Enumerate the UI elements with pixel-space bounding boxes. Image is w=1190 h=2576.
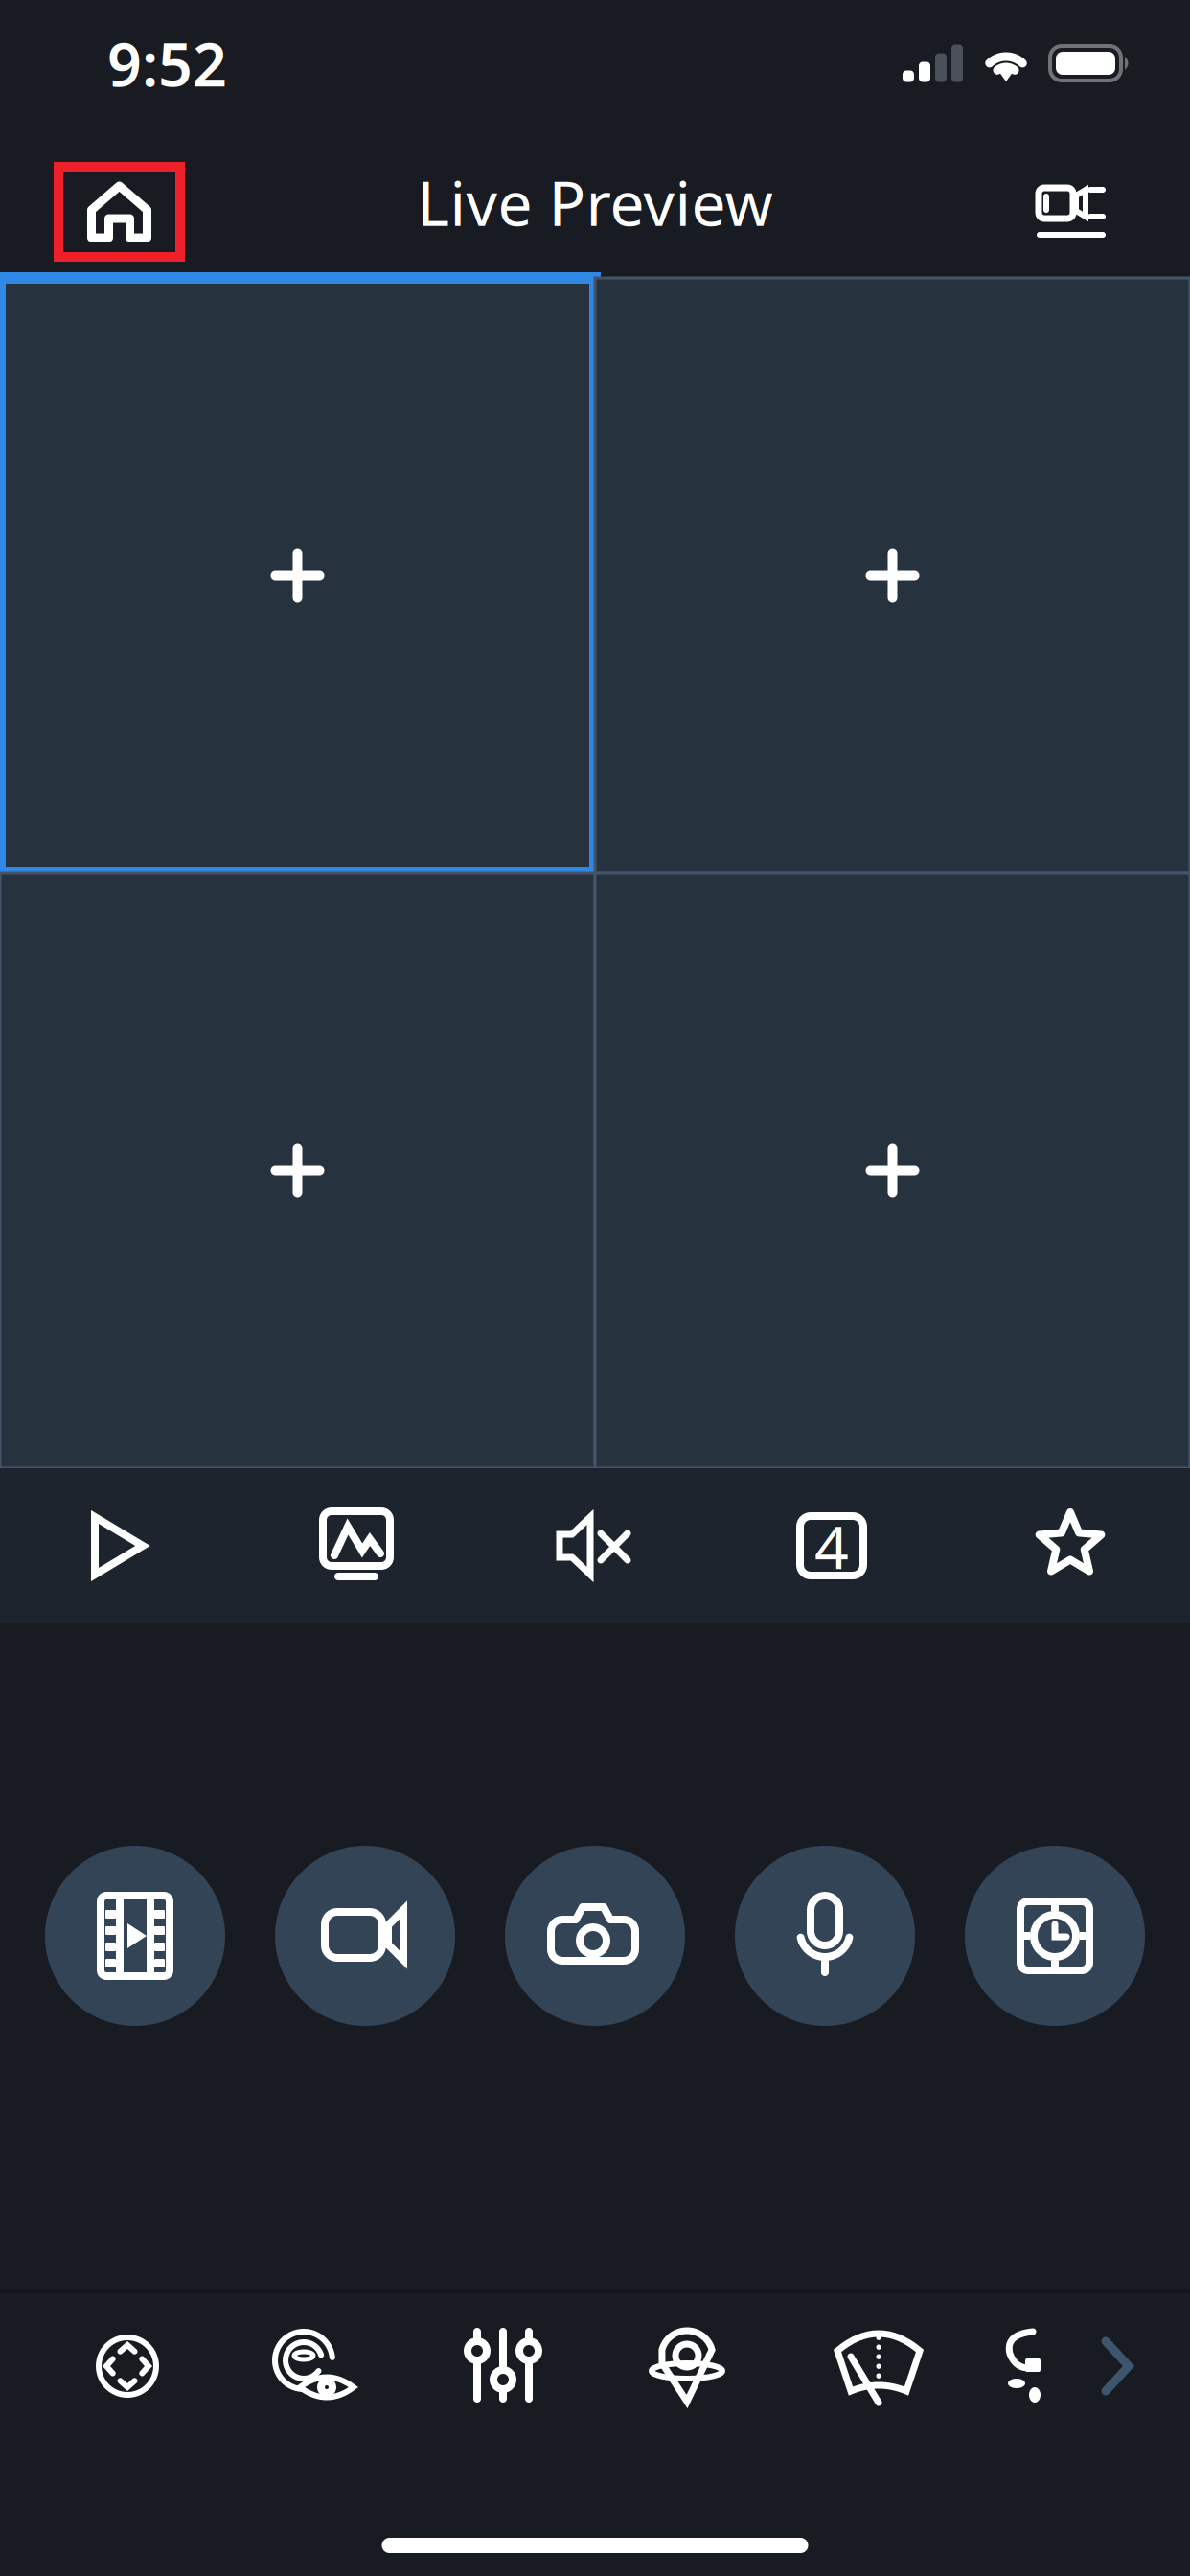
button[interactable]: Add camera xyxy=(0,873,595,1468)
button[interactable]: More controls xyxy=(1078,2293,1156,2439)
button[interactable]: Add camera xyxy=(595,278,1190,873)
button[interactable]: Timeline xyxy=(965,1846,1145,2026)
staticText: 9:52 xyxy=(107,23,227,103)
staticText: Live Preview xyxy=(417,161,773,243)
button[interactable]: Two-way talk xyxy=(735,1846,915,2026)
button[interactable]: Stream statistics xyxy=(238,1468,475,1623)
button[interactable]: Favourite xyxy=(950,1468,1190,1623)
button[interactable]: Play xyxy=(0,1468,238,1623)
button[interactable]: Multi-camera view xyxy=(1028,155,1114,268)
button[interactable]: Record video xyxy=(275,1846,455,2026)
button[interactable]: Add camera xyxy=(595,873,1190,1468)
button[interactable]: Playback xyxy=(45,1846,225,2026)
button[interactable]: Add camera xyxy=(0,278,595,873)
button[interactable]: Wiper xyxy=(785,2293,973,2439)
button[interactable]: Take snapshot xyxy=(505,1846,685,2026)
button[interactable]: Pan and tilt xyxy=(34,2293,221,2439)
button[interactable]: Split layout xyxy=(713,1468,950,1623)
button[interactable]: Home xyxy=(54,162,185,262)
button[interactable]: Preset position xyxy=(597,2293,785,2439)
button[interactable]: Mute audio xyxy=(475,1468,713,1623)
button[interactable]: Privacy mask xyxy=(221,2293,409,2439)
button[interactable]: Image settings xyxy=(409,2293,597,2439)
staticText: 4 xyxy=(814,1506,849,1586)
button[interactable]: Washer xyxy=(973,2293,1078,2439)
